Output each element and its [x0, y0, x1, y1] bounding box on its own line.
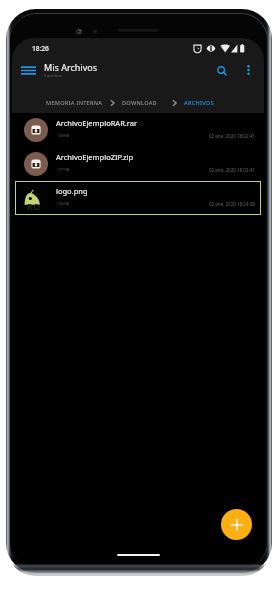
- button[interactable]: Menu: [15, 58, 41, 84]
- button[interactable]: More options: [238, 59, 259, 80]
- button[interactable]: Add: [221, 509, 252, 540]
- button[interactable]: RO: [15, 181, 261, 215]
- staticText: 3 archivos: [44, 73, 62, 78]
- button[interactable]: MEMORIA INTERNA: [46, 99, 103, 107]
- staticText: Mis Archivos: [44, 61, 97, 73]
- button[interactable]: ARCHIVOS: [184, 99, 214, 107]
- button[interactable]: ArchivoEjemploZIP.zip: [15, 147, 261, 181]
- staticText: 1,62 KB: [57, 201, 69, 206]
- staticText: RO: [27, 200, 41, 212]
- staticText: 02 ene. 2020 18:24:08: [209, 201, 255, 207]
- staticText: 02 ene. 2020 18:02:41: [209, 133, 255, 139]
- button[interactable]: ArchivoEjemploRAR.rar: [15, 113, 261, 147]
- button[interactable]: DOWNLOAD: [122, 99, 157, 107]
- staticText: 02 ene. 2020 18:02:41: [209, 167, 255, 173]
- staticText: 18:26: [32, 44, 49, 53]
- staticText: ArchivoEjemploRAR.rar: [56, 118, 138, 128]
- button[interactable]: Search: [209, 58, 234, 83]
- staticText: 1,69 KB: [57, 133, 69, 138]
- staticText: ArchivoEjemploZIP.zip: [56, 152, 134, 162]
- staticText: logo.png: [56, 186, 88, 196]
- staticText: 1,77 KB: [57, 167, 69, 172]
